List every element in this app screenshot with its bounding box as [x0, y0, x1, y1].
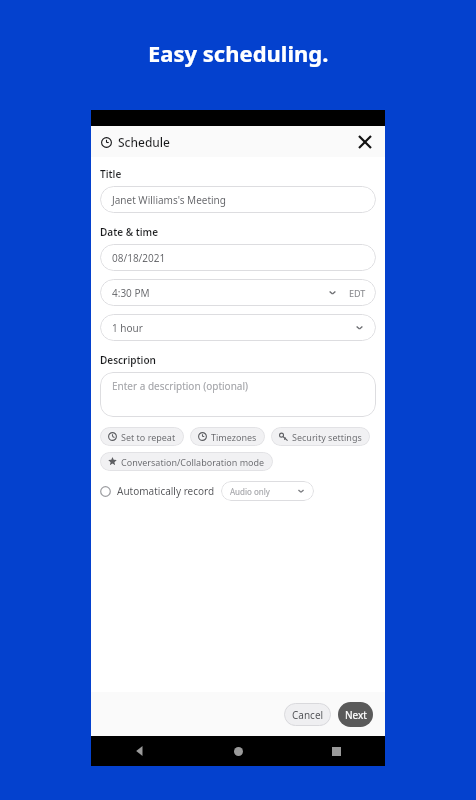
- staticText: 4:30 PM: [112, 286, 150, 300]
- staticText: Title: [100, 167, 122, 181]
- staticText: Security settings: [292, 431, 362, 443]
- staticText: 1 hour: [112, 321, 143, 335]
- button[interactable]: Janet Williams's Meeting: [100, 186, 376, 213]
- button[interactable]: Recent apps: [287, 736, 385, 766]
- button[interactable]: Enter a description (optional): [100, 372, 376, 417]
- staticText: Next: [345, 708, 367, 722]
- staticText: Schedule: [118, 134, 170, 150]
- button[interactable]: Timezones: [190, 427, 265, 446]
- staticText: Cancel: [292, 708, 324, 722]
- button[interactable]: 4:30 PM: [100, 279, 376, 306]
- button[interactable]: Back: [91, 736, 189, 766]
- button[interactable]: Cancel: [284, 703, 331, 726]
- button[interactable]: Next: [338, 702, 373, 727]
- staticText: Automatically record: [117, 484, 215, 498]
- button[interactable]: Home: [189, 736, 287, 766]
- staticText: Easy scheduling.: [148, 38, 329, 68]
- staticText: 08/18/2021: [112, 251, 166, 265]
- staticText: Timezones: [211, 431, 257, 443]
- staticText: Audio only: [230, 486, 270, 497]
- staticText: Conversation/Collaboration mode: [121, 456, 265, 468]
- staticText: Description: [100, 353, 156, 367]
- staticText: Date & time: [100, 225, 159, 239]
- staticText: Enter a description (optional): [112, 379, 248, 393]
- staticText: EDT: [349, 287, 366, 299]
- button[interactable]: 1 hour: [100, 314, 376, 341]
- staticText: Janet Williams's Meeting: [112, 193, 226, 207]
- button[interactable]: Close: [355, 132, 375, 152]
- button[interactable]: 08/18/2021: [100, 244, 376, 271]
- button[interactable]: Security settings: [271, 427, 370, 446]
- staticText: Set to repeat: [121, 431, 176, 443]
- button[interactable]: Set to repeat: [100, 427, 184, 446]
- button[interactable]: Automatically record: [100, 481, 314, 501]
- button[interactable]: Conversation/Collaboration mode: [100, 452, 273, 471]
- button[interactable]: Schedule: [101, 134, 170, 150]
- button[interactable]: Audio only: [221, 481, 314, 501]
